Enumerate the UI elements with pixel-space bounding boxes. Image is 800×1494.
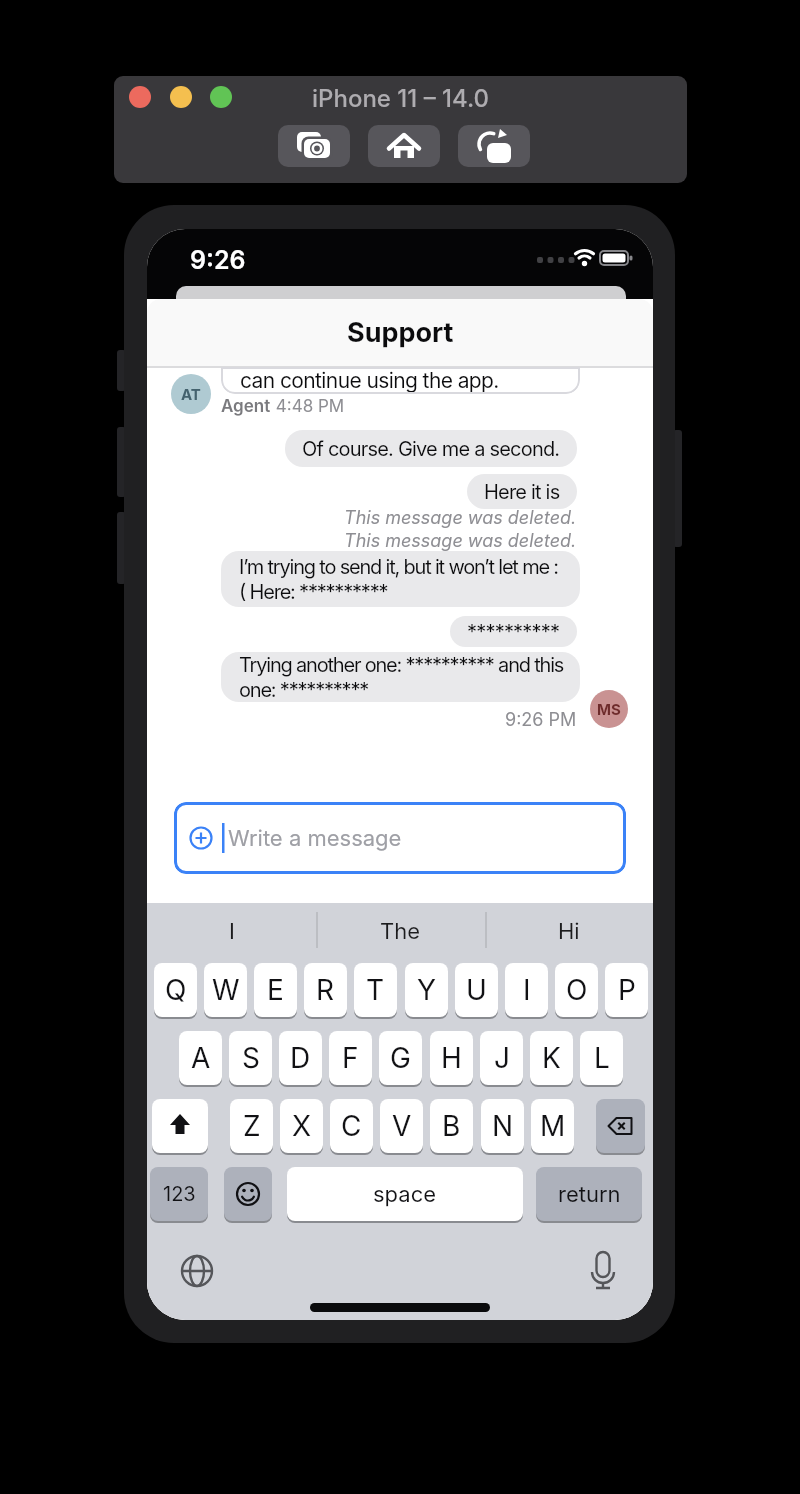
button[interactable]: J bbox=[480, 1031, 523, 1085]
button[interactable]: C bbox=[330, 1099, 373, 1153]
staticText: Y bbox=[417, 973, 437, 1007]
button[interactable]: P bbox=[605, 963, 648, 1017]
staticText: Of course. Give me a second. bbox=[302, 437, 560, 461]
staticText: B bbox=[442, 1109, 461, 1143]
button[interactable]: Q bbox=[154, 963, 197, 1017]
staticText: S bbox=[242, 1041, 260, 1075]
button[interactable]: D bbox=[279, 1031, 322, 1085]
staticText: U bbox=[466, 973, 487, 1007]
button[interactable]: H bbox=[430, 1031, 473, 1085]
staticText: L bbox=[594, 1041, 610, 1075]
staticText: 9:26 bbox=[190, 245, 246, 275]
staticText: can continue using the app. bbox=[240, 368, 499, 393]
button[interactable] bbox=[210, 86, 232, 108]
staticText: M bbox=[540, 1109, 566, 1143]
button[interactable]: S bbox=[229, 1031, 272, 1085]
staticText: Agent bbox=[221, 396, 271, 416]
button[interactable] bbox=[224, 1167, 272, 1221]
staticText: G bbox=[390, 1041, 411, 1075]
button[interactable] bbox=[368, 125, 440, 167]
button[interactable]: A bbox=[179, 1031, 222, 1085]
staticText: A bbox=[191, 1041, 211, 1075]
staticText: W bbox=[212, 973, 240, 1007]
button[interactable]: T bbox=[354, 963, 397, 1017]
staticText: K bbox=[542, 1041, 561, 1075]
staticText: The bbox=[380, 918, 421, 945]
staticText: Support bbox=[347, 316, 454, 349]
button[interactable]: V bbox=[380, 1099, 423, 1153]
button[interactable] bbox=[170, 86, 192, 108]
button[interactable]: G bbox=[379, 1031, 422, 1085]
staticText: T bbox=[366, 973, 385, 1007]
button[interactable] bbox=[129, 86, 151, 108]
staticText: Z bbox=[243, 1109, 261, 1143]
staticText: I bbox=[523, 973, 531, 1007]
staticText: Here it is bbox=[484, 480, 560, 504]
button[interactable]: N bbox=[481, 1099, 524, 1153]
staticText: V bbox=[392, 1109, 412, 1143]
staticText: 4:48 PM bbox=[271, 396, 345, 416]
staticText: R bbox=[316, 973, 335, 1007]
button[interactable]: E bbox=[254, 963, 297, 1017]
staticText: Hi bbox=[558, 918, 580, 945]
staticText: P bbox=[618, 973, 636, 1007]
button[interactable]: Z bbox=[230, 1099, 273, 1153]
staticText: AT bbox=[181, 385, 201, 403]
staticText: E bbox=[267, 973, 284, 1007]
staticText: 9:26 PM bbox=[505, 709, 577, 730]
staticText: This message was deleted. bbox=[344, 530, 577, 552]
button[interactable]: B bbox=[430, 1099, 473, 1153]
staticText: J bbox=[494, 1041, 510, 1075]
button[interactable]: O bbox=[555, 963, 598, 1017]
button[interactable] bbox=[278, 125, 350, 167]
staticText: D bbox=[290, 1041, 311, 1075]
button[interactable]: I bbox=[505, 963, 548, 1017]
staticText: Write a message bbox=[228, 825, 402, 852]
staticText: O bbox=[566, 973, 588, 1007]
staticText: Q bbox=[165, 973, 187, 1007]
button[interactable]: The bbox=[316, 903, 485, 960]
button[interactable]: U bbox=[455, 963, 498, 1017]
button[interactable]: F bbox=[329, 1031, 372, 1085]
button[interactable] bbox=[458, 125, 530, 167]
button[interactable]: I bbox=[147, 903, 316, 960]
button[interactable]: return bbox=[536, 1167, 642, 1221]
button[interactable] bbox=[152, 1099, 208, 1153]
staticText: 123 bbox=[163, 1182, 196, 1206]
button[interactable]: M bbox=[531, 1099, 574, 1153]
staticText: C bbox=[341, 1109, 362, 1143]
button[interactable]: Write a message bbox=[174, 802, 626, 874]
staticText: iPhone 11 – 14.0 bbox=[312, 84, 490, 113]
staticText: MS bbox=[597, 700, 621, 718]
staticText: F bbox=[342, 1041, 359, 1075]
button[interactable]: X bbox=[280, 1099, 323, 1153]
button[interactable]: W bbox=[204, 963, 247, 1017]
staticText: I bbox=[229, 918, 235, 945]
button[interactable]: space bbox=[287, 1167, 523, 1221]
staticText: I’m trying to send it, but it won’t let … bbox=[239, 555, 558, 604]
button[interactable]: K bbox=[530, 1031, 573, 1085]
staticText: return bbox=[558, 1181, 621, 1208]
button[interactable]: 123 bbox=[150, 1167, 208, 1221]
staticText: X bbox=[292, 1109, 312, 1143]
staticText: Trying another one: ********** and this … bbox=[239, 653, 564, 702]
staticText: N bbox=[492, 1109, 514, 1143]
staticText: H bbox=[441, 1041, 462, 1075]
staticText: space bbox=[373, 1181, 437, 1208]
staticText: ********** bbox=[467, 620, 560, 644]
button[interactable] bbox=[596, 1099, 645, 1153]
button[interactable]: Y bbox=[405, 963, 448, 1017]
button[interactable]: Hi bbox=[485, 903, 653, 960]
button[interactable]: R bbox=[304, 963, 347, 1017]
staticText: This message was deleted. bbox=[344, 507, 577, 529]
button[interactable]: L bbox=[580, 1031, 623, 1085]
